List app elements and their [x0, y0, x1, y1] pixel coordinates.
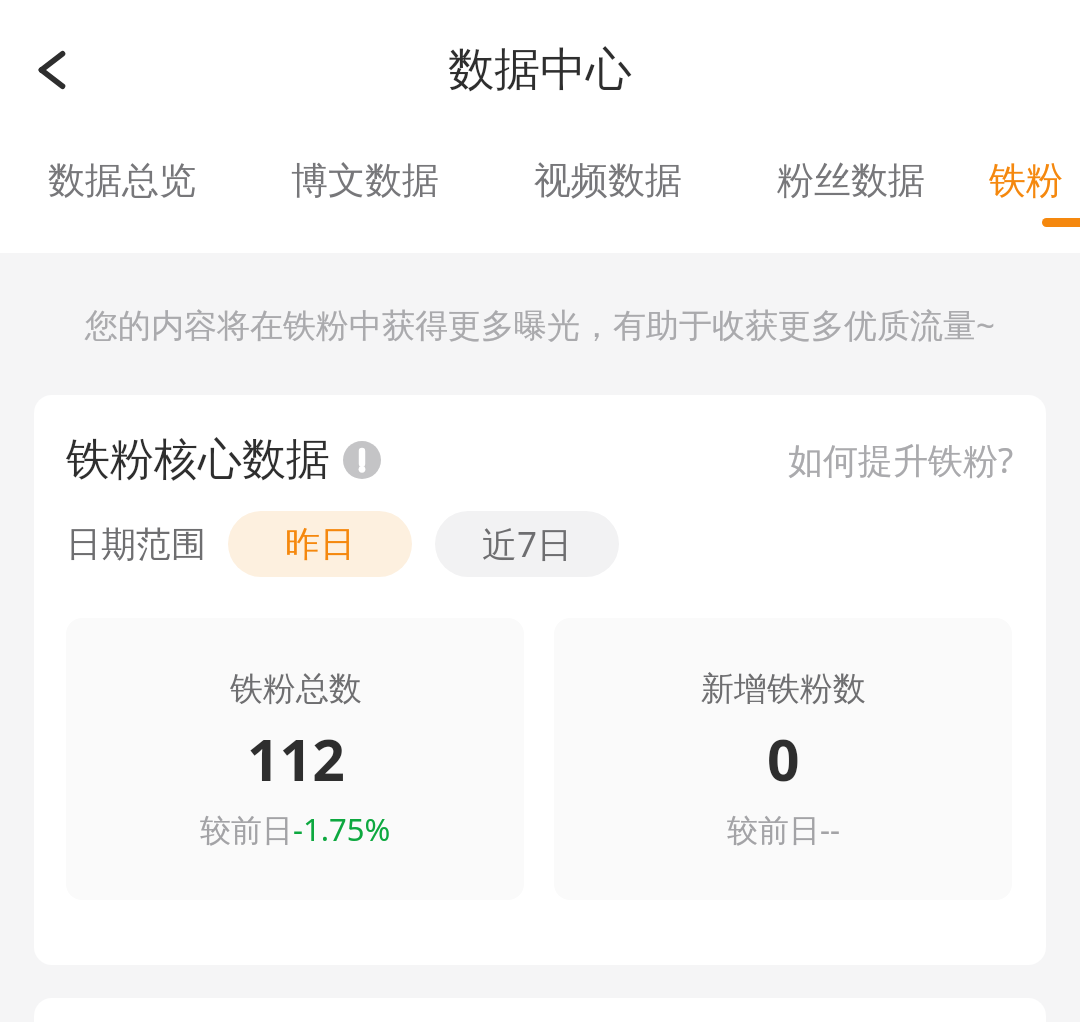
staticText: 博文数据	[291, 157, 439, 204]
staticText: 铁粉	[989, 157, 1063, 204]
staticText: 较前日-1.75%	[200, 808, 391, 850]
button[interactable]: 近7日	[435, 511, 619, 577]
button[interactable]: 数据总览	[0, 140, 243, 220]
button[interactable]: 粉丝数据	[729, 140, 972, 220]
button[interactable]: 视频数据	[486, 140, 729, 220]
staticText: 粉丝数据	[777, 157, 925, 204]
staticText: 铁粉核心数据	[66, 432, 330, 487]
button[interactable]: 博文数据	[243, 140, 486, 220]
staticText: 数据总览	[48, 157, 196, 204]
staticText: 0	[767, 720, 800, 798]
button[interactable]: 铁粉	[972, 140, 1080, 220]
staticText: 较前日--	[727, 808, 840, 850]
button[interactable]: Back	[22, 40, 82, 100]
staticText: 近7日	[482, 520, 573, 568]
staticText: 铁粉总数	[230, 668, 362, 710]
button[interactable]: 昨日	[228, 511, 412, 577]
staticText: 日期范围	[66, 522, 206, 566]
staticText: 昨日	[285, 522, 355, 566]
button[interactable]: 如何提升铁粉?	[788, 436, 1014, 484]
staticText: 112	[247, 720, 345, 798]
staticText: 数据中心	[448, 41, 632, 99]
staticText: 视频数据	[534, 157, 682, 204]
staticText: 新增铁粉数	[701, 668, 866, 710]
button[interactable]: 铁粉核心数据	[66, 432, 381, 487]
staticText: 如何提升铁粉?	[788, 436, 1014, 484]
button[interactable]: 新增铁粉数	[554, 618, 1012, 900]
staticText: 您的内容将在铁粉中获得更多曝光，有助于收获更多优质流量~	[85, 302, 995, 347]
button[interactable]: 铁粉总数	[66, 618, 524, 900]
